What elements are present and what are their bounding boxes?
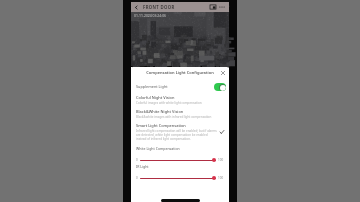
- staticText: 01-11-2024 03:24:06: [134, 13, 167, 18]
- staticText: 100: [218, 158, 224, 162]
- button[interactable]: Back: [132, 3, 140, 11]
- staticText: Supplement Light: [136, 84, 168, 89]
- staticText: 0: [136, 176, 138, 180]
- staticText: Smart Light Compensation: [136, 123, 186, 128]
- staticText: FRONT DOOR: [143, 4, 175, 10]
- staticText: Colorful images with white light compens…: [136, 101, 202, 105]
- button[interactable]: Colorful Night Vision: [131, 95, 229, 105]
- staticText: Compensation Light Configuration: [146, 70, 214, 75]
- button[interactable]: Close: [219, 69, 226, 76]
- staticText: White Light Compensation: [136, 146, 180, 151]
- button[interactable]: Black&White Night Vision: [131, 109, 229, 119]
- button[interactable]: White Light Compensation: [140, 157, 216, 163]
- staticText: Colorful Night Vision: [136, 95, 175, 100]
- button[interactable]: More options: [218, 3, 226, 11]
- button[interactable]: Supplement Light: [131, 81, 229, 92]
- button[interactable]: Smart Light Compensation: [131, 123, 229, 141]
- button[interactable]: IR Light: [140, 175, 216, 181]
- staticText: Infrared light compensation will be enab…: [136, 129, 217, 141]
- button[interactable]: Picture in picture: [209, 3, 217, 11]
- staticText: IR Light: [136, 164, 149, 169]
- staticText: 0: [136, 158, 138, 162]
- staticText: 100: [218, 176, 224, 180]
- staticText: Black&White Night Vision: [136, 109, 184, 114]
- staticText: Black&white images with infrared light c…: [136, 115, 212, 119]
